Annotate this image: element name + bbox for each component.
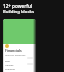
staticText: Utilities <box>5 63 14 66</box>
staticText: Rent <box>5 59 11 62</box>
staticText: 12+ powerful <box>3 3 33 9</box>
staticText: Financials <box>5 48 22 53</box>
staticText: Software <box>5 67 15 70</box>
staticText: Building blocks <box>3 9 35 15</box>
staticText: Monthly expenses <box>5 53 26 56</box>
